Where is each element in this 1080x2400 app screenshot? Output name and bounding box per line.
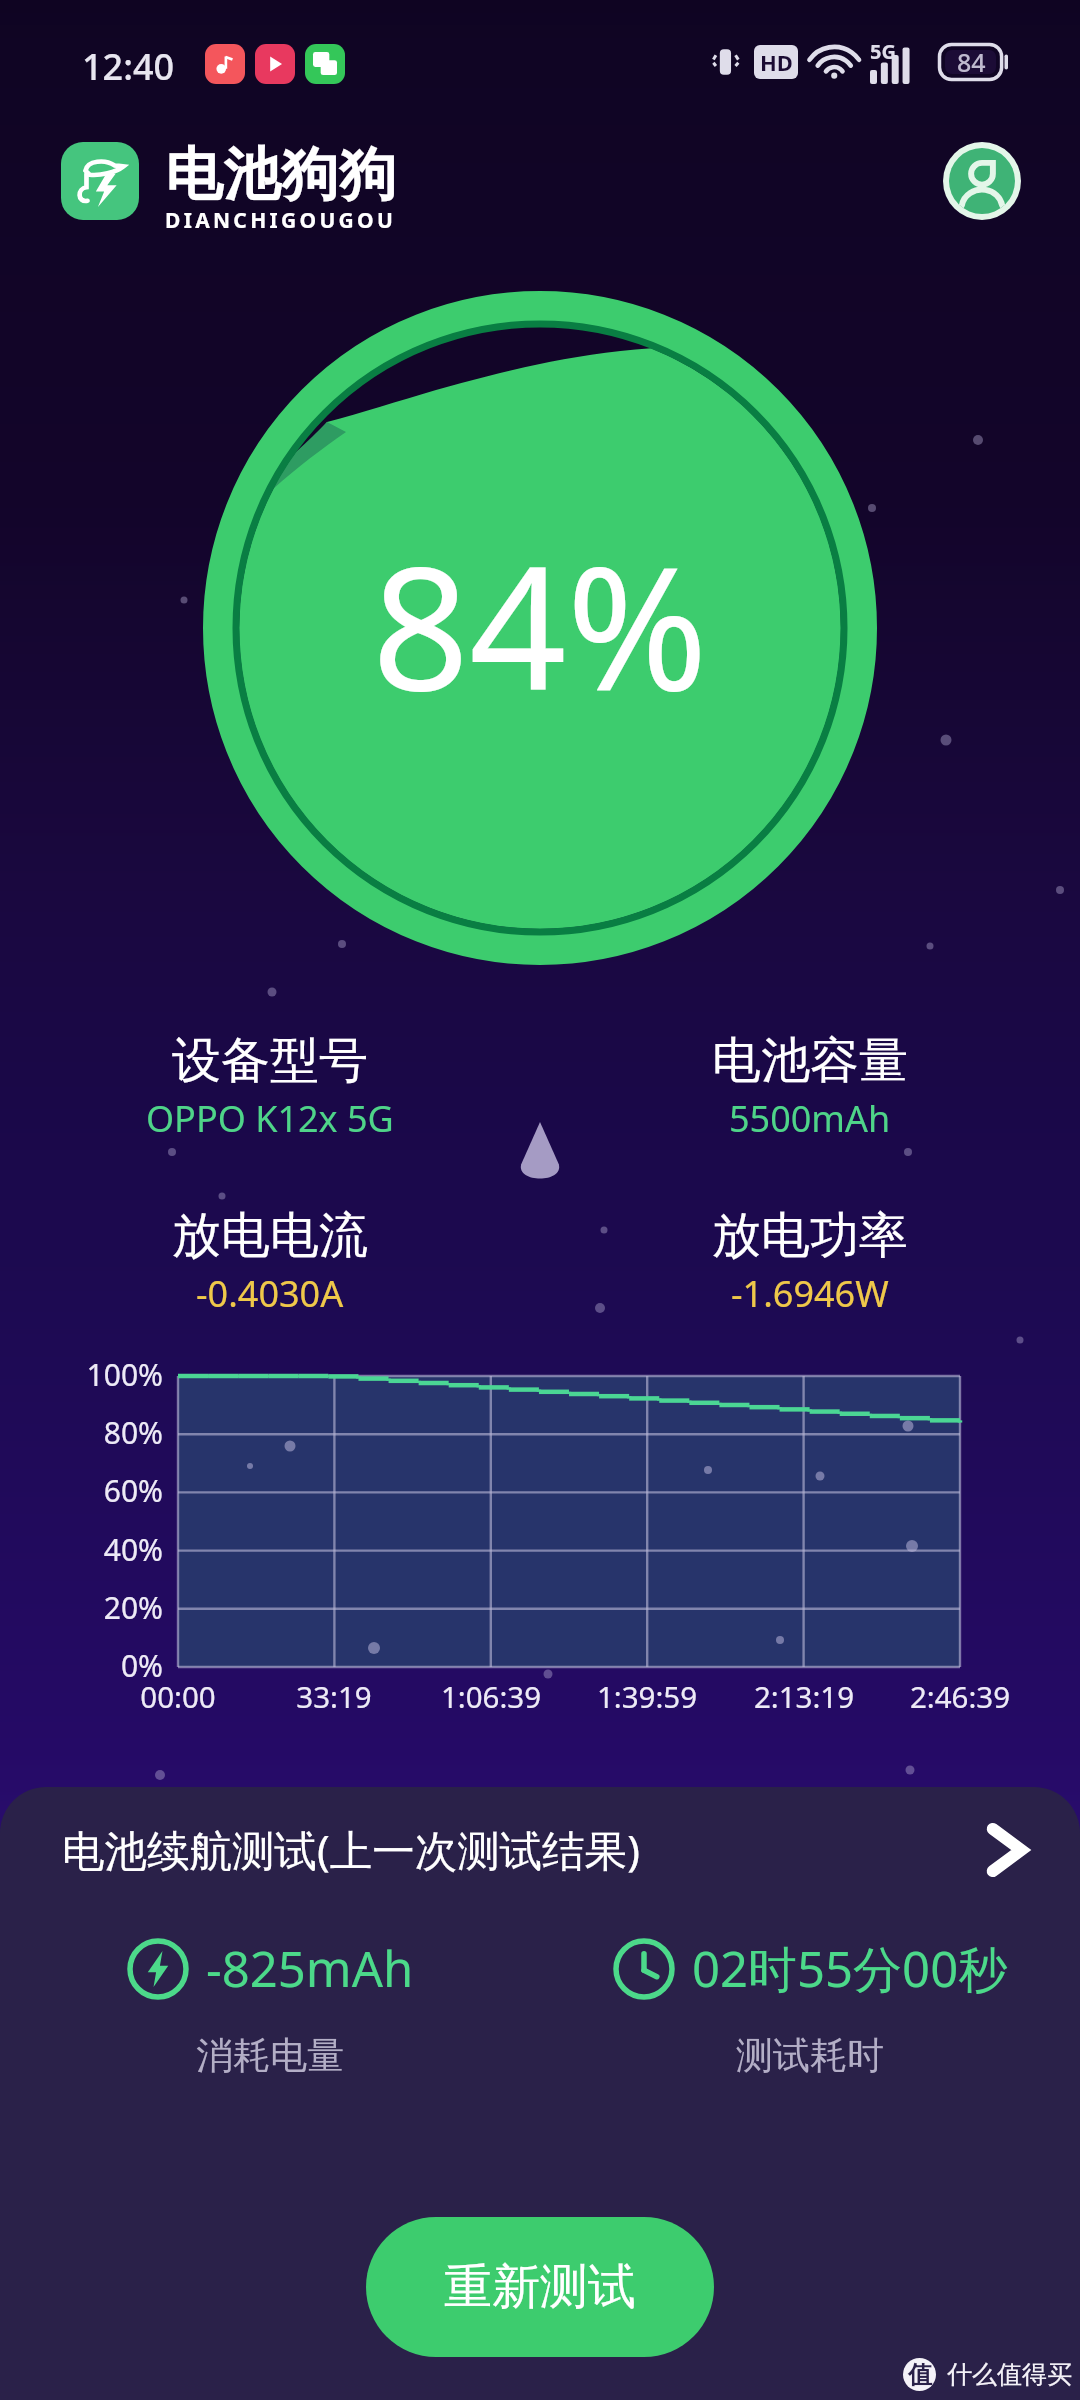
staticText: 84% bbox=[372, 508, 708, 740]
staticText: 重新测试 bbox=[444, 2257, 636, 2317]
staticText: 值 bbox=[908, 2360, 932, 2390]
staticText: DIANCHIGOUGOU bbox=[165, 206, 397, 235]
staticText: 02时55分00秒 bbox=[692, 1935, 1008, 2002]
staticText: -1.6946W bbox=[731, 1269, 889, 1318]
staticText: 1:06:39 bbox=[391, 1676, 591, 1716]
staticText: 设备型号 bbox=[172, 1030, 368, 1092]
staticText: 放电电流 bbox=[172, 1205, 368, 1267]
staticText: 电池狗狗 bbox=[165, 139, 397, 211]
staticText: OPPO K12x 5G bbox=[146, 1094, 394, 1143]
staticText: 1:39:59 bbox=[547, 1676, 747, 1716]
staticText: 5G bbox=[870, 38, 896, 65]
staticText: 100% bbox=[20, 1354, 163, 1395]
staticText: 什么值得买 bbox=[947, 2359, 1072, 2390]
staticText: 电池容量 bbox=[712, 1030, 908, 1092]
staticText: 2:13:19 bbox=[704, 1676, 904, 1716]
staticText: 00:00 bbox=[78, 1676, 278, 1716]
staticText: 测试耗时 bbox=[736, 2032, 884, 2079]
staticText: HD bbox=[760, 47, 793, 77]
staticText: 2:46:39 bbox=[860, 1676, 1060, 1716]
staticText: 60% bbox=[20, 1470, 163, 1511]
button[interactable]: 重新测试 bbox=[366, 2217, 714, 2357]
staticText: -825mAh bbox=[206, 1935, 414, 2002]
staticText: 80% bbox=[20, 1412, 163, 1453]
staticText: 40% bbox=[20, 1529, 163, 1570]
staticText: -0.4030A bbox=[196, 1269, 344, 1318]
staticText: 0% bbox=[20, 1645, 163, 1686]
staticText: 20% bbox=[20, 1587, 163, 1628]
staticText: 放电功率 bbox=[712, 1205, 908, 1267]
staticText: 电池续航测试(上一次测试结果) bbox=[62, 1821, 640, 1879]
staticText: 84 bbox=[957, 45, 986, 79]
staticText: 33:19 bbox=[234, 1676, 434, 1716]
staticText: 5500mAh bbox=[729, 1094, 891, 1143]
button[interactable]: Profile bbox=[949, 148, 1015, 214]
staticText: 消耗电量 bbox=[196, 2032, 344, 2079]
staticText: 12:40 bbox=[82, 42, 175, 91]
button[interactable]: 电池续航测试(上一次测试结果) bbox=[62, 1787, 1038, 1913]
